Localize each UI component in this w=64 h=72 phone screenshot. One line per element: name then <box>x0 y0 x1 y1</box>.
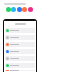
button[interactable]: App 1 <box>11 7 16 12</box>
button[interactable] <box>5 56 35 61</box>
button[interactable] <box>5 42 35 47</box>
button[interactable]: App 3 <box>22 7 27 12</box>
button[interactable] <box>5 70 35 71</box>
button[interactable] <box>5 63 35 68</box>
button[interactable] <box>5 49 35 54</box>
button[interactable] <box>5 28 35 33</box>
button[interactable]: App 4 <box>28 7 33 12</box>
button[interactable]: App 2 <box>17 7 22 12</box>
button[interactable]: App 0 <box>6 7 11 12</box>
button[interactable] <box>5 35 35 40</box>
